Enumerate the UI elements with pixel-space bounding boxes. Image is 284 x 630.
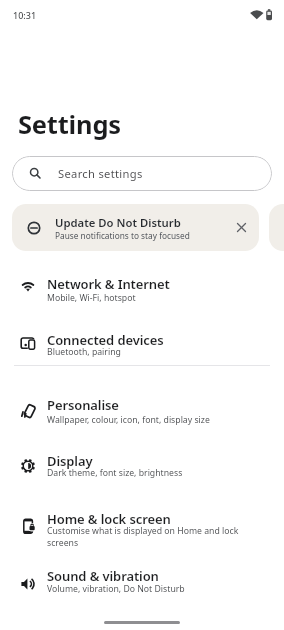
- staticText: Network & Internet: [47, 275, 170, 293]
- button[interactable]: Personalise: [0, 380, 284, 436]
- button[interactable]: Sound & vibration: [0, 554, 284, 610]
- staticText: Customise what is displayed on Home and …: [47, 525, 239, 537]
- staticText: Settings: [18, 107, 121, 142]
- staticText: Display: [47, 452, 93, 470]
- staticText: Volume, vibration, Do Not Disturb: [47, 583, 185, 595]
- staticText: screens: [47, 537, 79, 549]
- button[interactable]: Home & lock screen: [0, 492, 284, 554]
- staticText: Pause notifications to stay focused: [55, 230, 190, 241]
- button[interactable]: Network & Internet: [0, 258, 284, 313]
- staticText: Update Do Not Disturb: [55, 215, 181, 230]
- staticText: Home & lock screen: [47, 510, 171, 528]
- button[interactable]: Display: [0, 436, 284, 492]
- button[interactable]: Connected devices: [0, 313, 284, 365]
- staticText: Sound & vibration: [47, 567, 159, 585]
- staticText: Connected devices: [47, 331, 164, 349]
- staticText: 10:31: [13, 9, 37, 21]
- staticText: Mobile, Wi-Fi, hotspot: [47, 292, 136, 304]
- staticText: Personalise: [47, 396, 119, 414]
- staticText: Search settings: [58, 166, 143, 181]
- button[interactable]: Update Do Not Disturb: [12, 204, 259, 251]
- button[interactable]: [229, 215, 253, 239]
- button[interactable]: Search settings: [12, 156, 272, 191]
- staticText: Bluetooth, pairing: [47, 346, 121, 358]
- staticText: Dark theme, font size, brightness: [47, 467, 183, 479]
- staticText: Wallpaper, colour, icon, font, display s…: [47, 414, 210, 426]
